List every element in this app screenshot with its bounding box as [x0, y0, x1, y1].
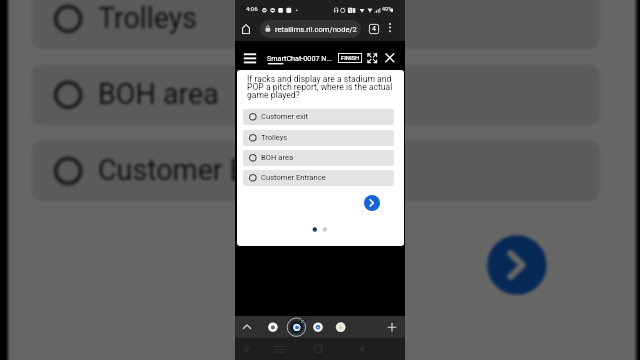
button[interactable]: Trolleys — [243, 130, 394, 146]
staticText: 4 — [372, 25, 376, 33]
button[interactable]: Tabs — [369, 24, 379, 34]
button[interactable]: Back — [347, 338, 367, 358]
staticText: FINISH — [341, 55, 360, 62]
staticText: POP a pitch report, where is the actual — [247, 82, 393, 92]
button[interactable]: More options — [384, 22, 396, 34]
button[interactable]: Recents — [274, 338, 294, 358]
staticText: SmartChat-0007 N... — [267, 54, 333, 62]
button[interactable]: Customer Entrance — [243, 170, 394, 186]
button[interactable]: Tab 2 — [285, 316, 305, 337]
button[interactable]: retaillms.ril.com/node/2 — [260, 20, 361, 38]
staticText: retaillms.ril.com/node/2 — [275, 25, 357, 34]
button[interactable]: Home — [239, 22, 253, 36]
button[interactable]: Home — [310, 338, 330, 358]
staticText: Trolleys — [261, 133, 288, 142]
staticText: Customer exit — [261, 112, 309, 121]
button[interactable]: Next — [364, 195, 380, 211]
button[interactable]: New tab — [383, 319, 401, 334]
staticText: If racks and display are a stadium and — [247, 74, 392, 84]
staticText: game played? — [247, 90, 300, 100]
staticText: Customer Entrance — [98, 153, 342, 187]
button[interactable]: Fullscreen — [367, 53, 378, 64]
staticText: 4:06 — [246, 5, 258, 12]
staticText: Trolleys — [98, 1, 197, 35]
button[interactable]: Menu — [242, 50, 258, 66]
button[interactable]: Close — [385, 53, 395, 63]
button[interactable]: Tab 4 — [331, 316, 351, 337]
staticText: 49% — [382, 6, 393, 12]
button[interactable]: BOH area — [243, 150, 394, 166]
button[interactable]: Tab 3 — [308, 316, 328, 337]
staticText: BOH area — [98, 77, 219, 111]
staticText: Customer Entrance — [261, 173, 326, 182]
button[interactable]: FINISH — [338, 53, 362, 63]
button[interactable]: Expand toolbar — [241, 321, 253, 333]
staticText: BOH area — [261, 153, 294, 162]
button[interactable]: Tab 1 — [264, 316, 284, 337]
button[interactable]: Customer exit — [243, 109, 394, 125]
